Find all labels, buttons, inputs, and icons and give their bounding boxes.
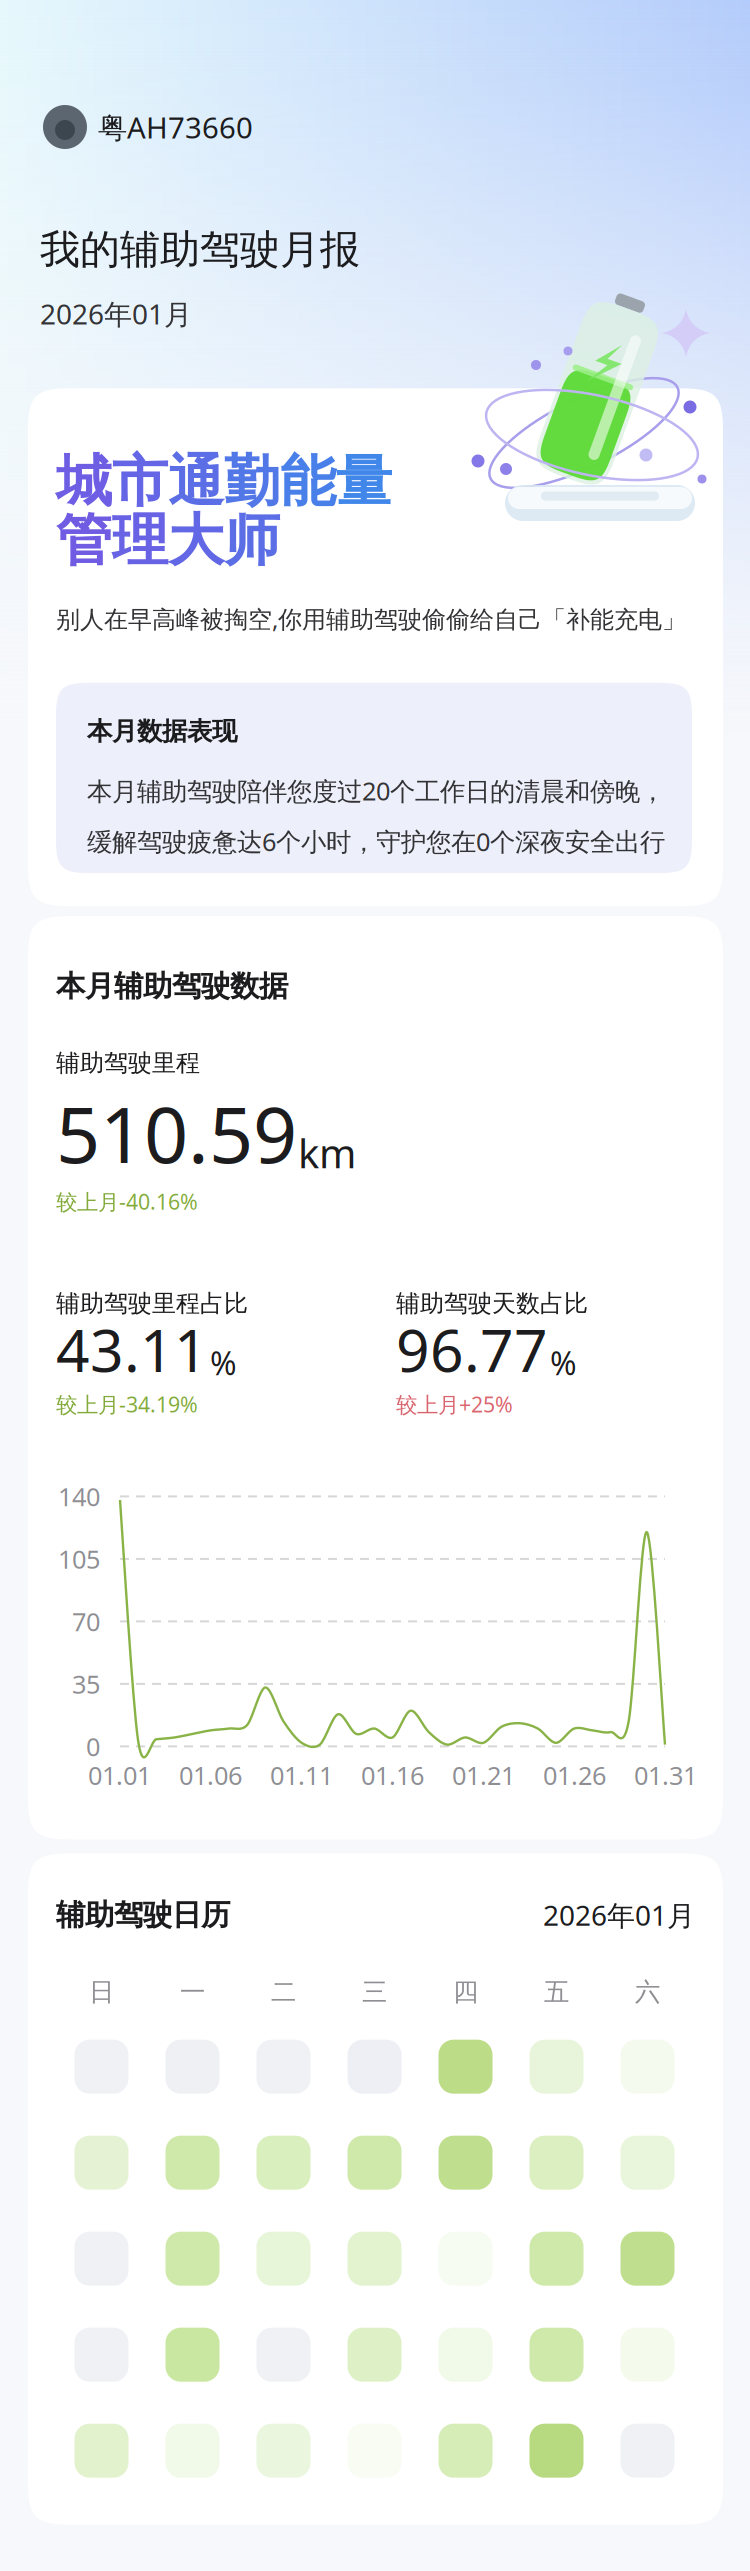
- staticText: 01.11: [270, 1758, 333, 1792]
- staticText: 通: [168, 447, 224, 516]
- staticText: 70: [72, 1605, 100, 1638]
- staticText: 辅助驾驶里程: [56, 1048, 200, 1078]
- staticText: 日: [89, 1977, 114, 2008]
- staticText: 本月数据表现: [87, 716, 237, 747]
- staticText: 二: [271, 1977, 296, 2008]
- staticText: 01.31: [634, 1758, 697, 1792]
- staticText: 0: [86, 1730, 100, 1763]
- staticText: 大: [168, 506, 224, 575]
- staticText: 辅助驾驶日历: [56, 1897, 230, 1933]
- staticText: 六: [635, 1977, 660, 2008]
- staticText: 较上月+25%: [396, 1390, 513, 1418]
- staticText: 2026年01月: [40, 295, 192, 332]
- staticText: 我的辅助驾驶月报: [40, 225, 360, 274]
- staticText: 01.06: [179, 1758, 242, 1792]
- staticText: 96.77: [396, 1310, 548, 1388]
- staticText: 本月辅助驾驶数据: [56, 968, 288, 1004]
- staticText: 43.11: [56, 1310, 208, 1388]
- staticText: 较上月-40.16%: [56, 1187, 198, 1216]
- staticText: %: [210, 1342, 237, 1384]
- staticText: 本月辅助驾驶陪伴您度过20个工作日的清晨和傍晚，: [87, 774, 665, 807]
- staticText: 辅助驾驶里程占比: [56, 1289, 248, 1318]
- staticText: 140: [58, 1480, 100, 1513]
- staticText: 粤AH73660: [98, 107, 253, 146]
- staticText: 2026年01月: [543, 1896, 695, 1934]
- button[interactable]: 粤AH73660: [0, 105, 750, 149]
- staticText: 理: [112, 506, 168, 575]
- staticText: 市: [112, 447, 168, 516]
- staticText: 01.01: [88, 1758, 151, 1792]
- staticText: 城: [56, 447, 112, 516]
- staticText: 01.16: [361, 1758, 424, 1792]
- staticText: 105: [58, 1542, 100, 1576]
- staticText: 缓解驾驶疲惫达6个小时，守护您在0个深夜安全出行: [87, 824, 665, 858]
- staticText: km: [298, 1126, 356, 1179]
- staticText: 三: [362, 1977, 387, 2008]
- staticText: 一: [180, 1977, 205, 2008]
- staticText: 量: [336, 447, 392, 516]
- staticText: 五: [544, 1977, 569, 2008]
- staticText: 辅助驾驶天数占比: [396, 1289, 588, 1318]
- staticText: 师: [224, 506, 280, 575]
- staticText: 较上月-34.19%: [56, 1390, 198, 1418]
- staticText: %: [550, 1342, 577, 1384]
- staticText: 四: [453, 1977, 478, 2008]
- staticText: 别人在早高峰被掏空,你用辅助驾驶偷偷给自己「补能充电」: [56, 603, 686, 635]
- staticText: 01.26: [543, 1758, 606, 1792]
- staticText: 能: [280, 447, 336, 516]
- staticText: 管: [56, 506, 112, 575]
- staticText: 01.21: [452, 1758, 515, 1792]
- staticText: 35: [72, 1667, 100, 1701]
- staticText: 510.59: [56, 1082, 297, 1184]
- staticText: 勤: [224, 447, 280, 516]
